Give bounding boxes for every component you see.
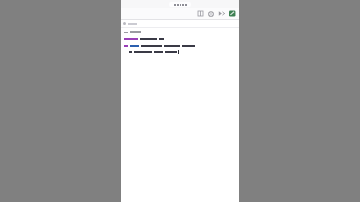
button[interactable]: Build — [228, 9, 237, 18]
button[interactable]: Settings — [206, 9, 215, 18]
button[interactable]: Layout — [196, 9, 205, 18]
button[interactable] — [123, 22, 137, 25]
button[interactable]: Run — [216, 8, 227, 19]
button[interactable] — [122, 37, 239, 41]
button[interactable] — [122, 44, 239, 48]
button[interactable] — [122, 30, 239, 34]
button[interactable] — [122, 50, 239, 54]
